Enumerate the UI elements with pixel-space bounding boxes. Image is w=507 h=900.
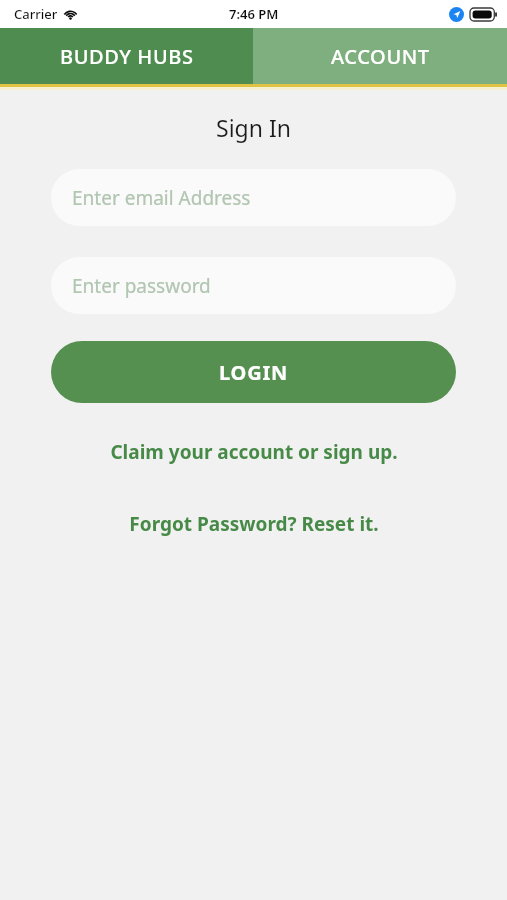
staticText: Claim your account or sign up. — [110, 439, 398, 465]
staticText: ACCOUNT — [331, 43, 430, 70]
staticText: Carrier — [14, 5, 58, 23]
button[interactable]: LOGIN — [51, 341, 456, 403]
staticText: Enter email Address — [72, 185, 251, 211]
button[interactable]: Enter email Address — [51, 169, 456, 226]
button[interactable]: ACCOUNT — [253, 28, 507, 84]
button[interactable]: BUDDY HUBS — [0, 28, 253, 84]
staticText: LOGIN — [219, 359, 289, 386]
staticText: Enter password — [72, 273, 211, 299]
staticText: BUDDY HUBS — [60, 43, 194, 70]
button[interactable]: Forgot Password? Reset it. — [0, 507, 507, 541]
button[interactable]: Claim your account or sign up. — [0, 435, 507, 469]
staticText: Forgot Password? Reset it. — [129, 511, 379, 537]
staticText: Sign In — [216, 112, 291, 143]
button[interactable]: Enter password — [51, 257, 456, 314]
staticText: 7:46 PM — [229, 5, 279, 23]
